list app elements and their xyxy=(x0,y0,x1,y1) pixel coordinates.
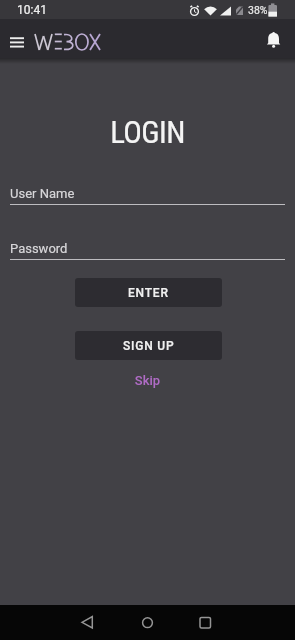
staticText: LOGIN xyxy=(0,114,295,150)
staticText: User Name xyxy=(10,186,75,201)
staticText: ENTER xyxy=(128,286,169,300)
staticText: 38% xyxy=(248,4,268,16)
staticText: Password xyxy=(10,241,68,256)
staticText: 10:41 xyxy=(17,3,47,17)
staticText: SIGN UP xyxy=(123,339,175,353)
staticText: Skip xyxy=(0,373,295,388)
